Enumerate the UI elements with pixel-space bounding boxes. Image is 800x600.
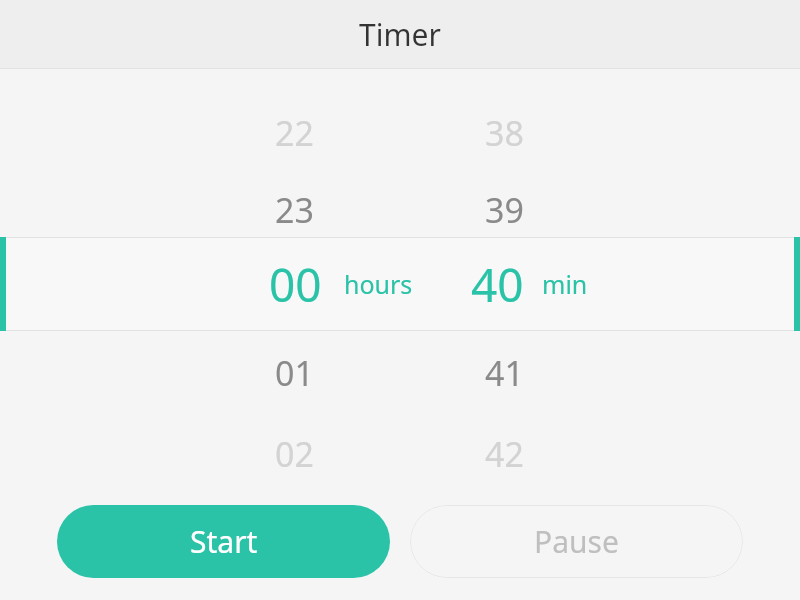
staticText: Pause xyxy=(534,521,619,562)
staticText: 22 xyxy=(275,110,314,156)
button[interactable]: 02 xyxy=(234,421,354,487)
staticText: 00 xyxy=(269,253,322,316)
staticText: 42 xyxy=(485,431,524,477)
staticText: 02 xyxy=(275,431,314,477)
button[interactable]: 23 xyxy=(234,180,354,240)
staticText: 41 xyxy=(485,350,524,396)
button[interactable]: 39 xyxy=(444,180,564,240)
staticText: 38 xyxy=(485,110,524,156)
staticText: 23 xyxy=(275,187,314,233)
staticText: 39 xyxy=(485,187,524,233)
staticText: Timer xyxy=(359,14,441,55)
button[interactable]: 22 xyxy=(234,100,354,166)
staticText: Start xyxy=(190,521,258,562)
staticText: 40 xyxy=(471,253,524,316)
button[interactable]: 01 xyxy=(234,341,354,405)
button[interactable]: Pause xyxy=(410,505,743,578)
staticText: min xyxy=(542,267,588,301)
staticText: 01 xyxy=(275,350,314,396)
button[interactable]: 41 xyxy=(444,341,564,405)
button[interactable]: Start xyxy=(57,505,390,578)
button[interactable]: 42 xyxy=(444,421,564,487)
staticText: hours xyxy=(344,267,413,301)
button[interactable]: 38 xyxy=(444,100,564,166)
button[interactable]: 00 xyxy=(0,237,800,331)
